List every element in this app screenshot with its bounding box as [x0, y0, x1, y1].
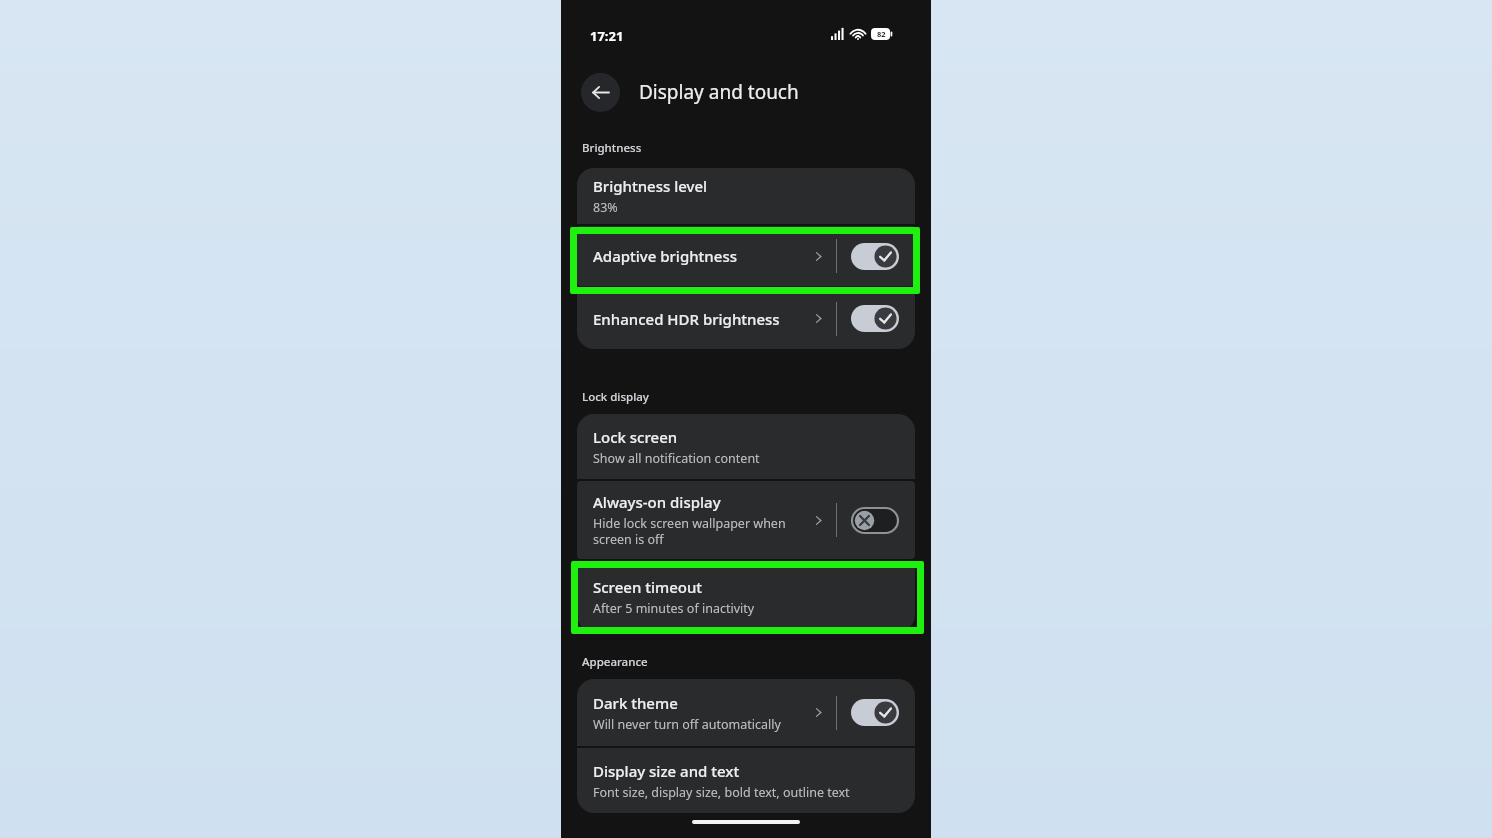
staticText: Hide lock screen wallpaper when screen i… — [593, 515, 786, 548]
staticText: Font size, display size, bold text, outl… — [593, 784, 850, 801]
staticText: Brightness level — [593, 176, 708, 196]
staticText: 83% — [593, 199, 618, 216]
button[interactable]: Toggle off — [851, 507, 899, 534]
button[interactable]: Toggle on — [851, 699, 899, 726]
staticText: Will never turn off automatically — [593, 716, 781, 733]
button[interactable]: Lock screen — [577, 414, 915, 479]
staticText: 82 — [877, 29, 886, 39]
staticText: Appearance — [582, 654, 648, 670]
staticText: Screen timeout — [593, 577, 703, 597]
button[interactable]: Screen timeout — [577, 561, 915, 632]
staticText: Adaptive brightness — [593, 246, 737, 266]
button[interactable]: Brightness level — [577, 168, 915, 224]
button[interactable]: Back — [581, 73, 620, 112]
button[interactable]: Enhanced HDR brightness — [577, 288, 915, 349]
button[interactable]: Dark theme — [577, 679, 915, 746]
button[interactable]: Display size and text — [577, 748, 915, 813]
staticText: After 5 minutes of inactivity — [593, 600, 755, 617]
staticText: Display size and text — [593, 761, 740, 781]
staticText: Display and touch — [639, 79, 799, 105]
button[interactable]: Toggle on — [851, 305, 899, 332]
staticText: 17:21 — [590, 27, 624, 45]
staticText: Lock display — [582, 389, 649, 405]
staticText: Brightness — [582, 140, 642, 156]
button[interactable]: Toggle on — [851, 243, 899, 270]
staticText: Dark theme — [593, 693, 678, 713]
button[interactable]: Always-on display — [577, 481, 915, 559]
staticText: Always-on display — [593, 492, 721, 512]
staticText: Enhanced HDR brightness — [593, 309, 780, 329]
staticText: Show all notification content — [593, 450, 760, 467]
staticText: Lock screen — [593, 427, 678, 447]
button[interactable]: Adaptive brightness — [577, 226, 915, 286]
